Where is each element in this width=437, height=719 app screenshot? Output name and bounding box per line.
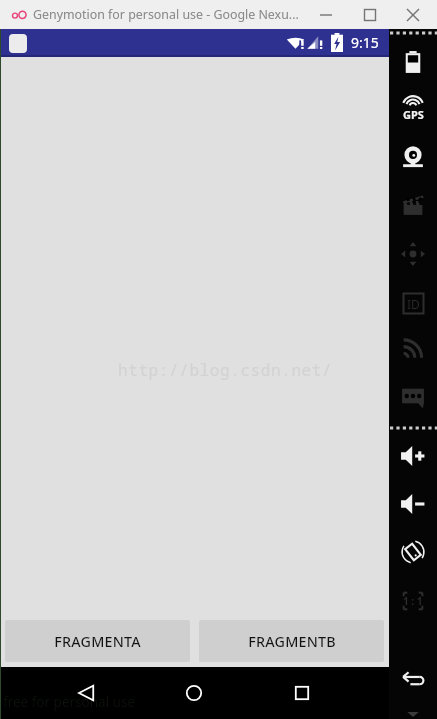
staticText: ID xyxy=(407,296,420,312)
staticText: 9:15 xyxy=(351,33,379,52)
button[interactable]: Expand xyxy=(389,691,437,719)
button[interactable]: Scale 1 to 1 xyxy=(389,578,437,624)
staticText: FRAGMENTB xyxy=(248,632,336,651)
button[interactable]: FRAGMENTB xyxy=(199,620,384,662)
button[interactable]: Maximize xyxy=(348,0,392,29)
button[interactable]: Close xyxy=(391,0,435,29)
button[interactable]: Messages xyxy=(389,373,437,419)
button[interactable]: Screen recording xyxy=(389,182,437,228)
button[interactable]: Navigation pad xyxy=(389,231,437,277)
button[interactable]: Battery xyxy=(389,39,437,85)
button[interactable]: Back xyxy=(57,667,117,719)
button[interactable]: Network xyxy=(389,326,437,372)
staticText: free for personal use xyxy=(3,693,136,711)
button[interactable]: Identifiers xyxy=(389,280,437,326)
button[interactable]: Minimize xyxy=(304,0,348,29)
button[interactable]: FRAGMENTA xyxy=(5,620,190,662)
staticText: 1 : 1 xyxy=(403,594,423,608)
button[interactable]: Back xyxy=(389,655,437,701)
staticText: FRAGMENTA xyxy=(54,632,141,651)
button[interactable]: Volume up xyxy=(389,433,437,479)
button[interactable]: Recents xyxy=(272,667,332,719)
button[interactable]: Volume down xyxy=(389,481,437,527)
button[interactable]: Camera xyxy=(389,135,437,181)
button[interactable]: Home xyxy=(164,667,224,719)
button[interactable]: Rotate xyxy=(389,529,437,575)
button[interactable]: GPS xyxy=(389,86,437,132)
staticText: Genymotion for personal use - Google Nex… xyxy=(33,6,299,23)
staticText: GPS xyxy=(403,107,424,122)
staticText: http://blog.csdn.net/ xyxy=(118,359,333,381)
